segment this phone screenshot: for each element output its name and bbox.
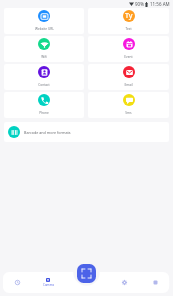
button[interactable]: Event [88,36,169,62]
button[interactable]: Ty [88,8,169,34]
button[interactable]: More [142,272,168,293]
staticText: Contact [38,83,50,87]
staticText: Camera [43,283,54,287]
staticText: Website URL [35,27,54,31]
button[interactable]: Scan barcode [77,264,96,283]
button[interactable]: Email [88,64,169,90]
button[interactable]: Camera [35,272,61,293]
button[interactable]: Settings [111,272,137,293]
staticText: Event [124,55,133,59]
staticText: Phone [39,111,49,115]
staticText: Text [125,27,132,31]
staticText: Sms [125,111,132,115]
button[interactable]: Website URL [4,8,84,34]
staticText: 90% [135,1,144,7]
button[interactable]: Phone [4,92,84,118]
staticText: Ty [125,11,133,21]
button[interactable]: Sms [88,92,169,118]
button[interactable]: Barcode and more formats [4,122,169,142]
button[interactable]: Wifi [4,36,84,62]
staticText: 11:56 AM [150,1,170,7]
button[interactable]: Contact [4,64,84,90]
staticText: Email [124,83,133,87]
staticText: Barcode and more formats [24,130,71,135]
staticText: Wifi [41,55,47,59]
button[interactable]: History [4,272,30,293]
